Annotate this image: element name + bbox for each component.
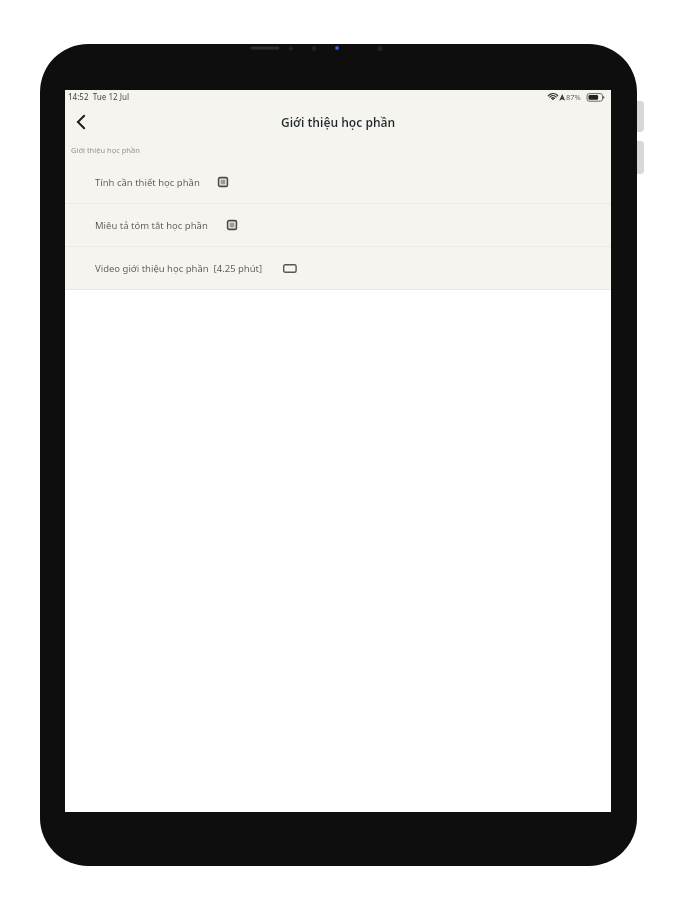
staticText: 14:52 Tue 12 Jul xyxy=(68,91,130,102)
staticText: Tính cần thiết học phần xyxy=(95,176,200,189)
button[interactable]: Tính cần thiết học phần xyxy=(65,161,611,203)
staticText: Giới thiệu học phần xyxy=(71,145,140,155)
staticText: Miêu tả tóm tắt học phần xyxy=(95,219,208,232)
staticText: Giới thiệu học phần xyxy=(281,114,396,130)
button[interactable]: Miêu tả tóm tắt học phần xyxy=(65,204,611,246)
staticText: Video giới thiệu học phần [4.25 phút] xyxy=(95,262,263,275)
button[interactable] xyxy=(68,109,94,135)
staticText: 87% xyxy=(566,92,581,102)
button[interactable]: Video giới thiệu học phần [4.25 phút] xyxy=(65,247,611,289)
